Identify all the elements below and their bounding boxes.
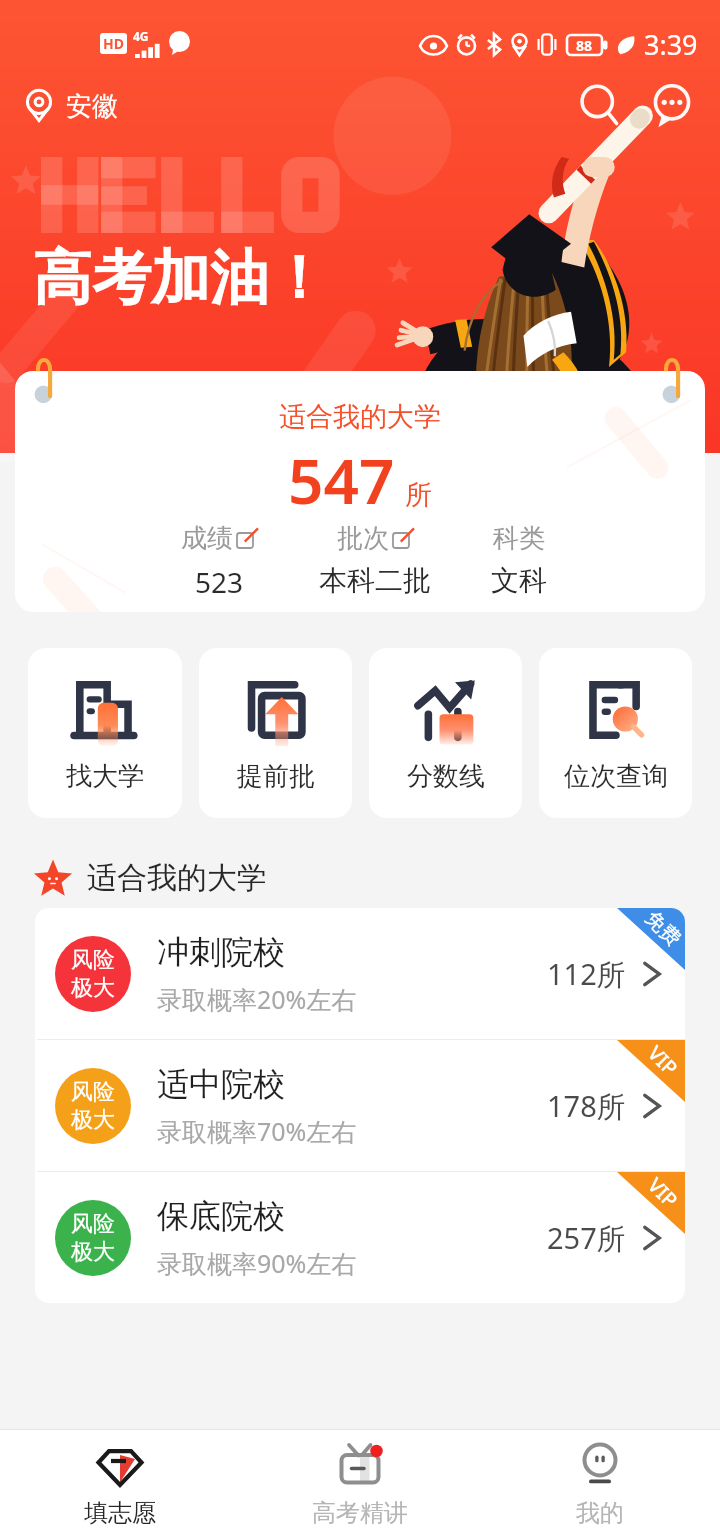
staticText: HD [103, 34, 124, 53]
button[interactable]: 风险 [35, 1172, 685, 1303]
staticText: 冲刺院校 [157, 932, 285, 972]
staticText: 高考精讲 [312, 1498, 408, 1528]
button[interactable]: Messages [644, 78, 700, 134]
staticText: 适中院校 [157, 1064, 285, 1104]
staticText: 找大学 [66, 760, 144, 793]
staticText: 保底院校 [157, 1196, 285, 1236]
staticText: 高考加油！ [33, 241, 328, 315]
staticText: 523 [195, 563, 244, 601]
button[interactable]: Search [572, 78, 628, 134]
button[interactable]: 风险 [35, 1040, 685, 1171]
button[interactable]: 分数线 [369, 648, 522, 818]
staticText: 位次查询 [564, 760, 668, 793]
staticText: VIP [642, 1172, 684, 1213]
staticText: 我的 [576, 1498, 624, 1528]
staticText: 88 [576, 36, 593, 55]
staticText: 录取概率70%左右 [157, 1114, 357, 1148]
staticText: 填志愿 [84, 1498, 156, 1528]
staticText: 科类 [493, 522, 545, 555]
staticText: 4G [133, 28, 149, 44]
staticText: 极大 [71, 1106, 115, 1134]
staticText: 适合我的大学 [87, 859, 267, 897]
staticText: 成绩 [181, 522, 233, 555]
staticText: 178所 [547, 1086, 626, 1126]
staticText: 批次 [337, 522, 389, 555]
staticText: 风险 [71, 1078, 115, 1106]
button[interactable]: 风险 [35, 908, 685, 1039]
staticText: 风险 [71, 1210, 115, 1238]
staticText: VIP [642, 1040, 684, 1081]
button[interactable]: 提前批 [199, 648, 352, 818]
button[interactable]: 位次查询 [539, 648, 692, 818]
staticText: 适合我的大学 [279, 400, 441, 434]
button[interactable]: 填志愿 [0, 1430, 240, 1540]
staticText: 112所 [547, 954, 626, 994]
staticText: 极大 [71, 1238, 115, 1266]
button[interactable]: 找大学 [28, 648, 182, 818]
staticText: 提前批 [237, 760, 315, 793]
staticText: 风险 [71, 946, 115, 974]
staticText: 547 [288, 438, 395, 522]
staticText: 257所 [547, 1218, 626, 1258]
button[interactable]: 高考精讲 [240, 1430, 480, 1540]
staticText: 安徽 [66, 90, 118, 123]
staticText: 3:39 [644, 26, 698, 63]
staticText: 免费 [640, 908, 685, 951]
staticText: 极大 [71, 974, 115, 1002]
button[interactable]: 我的 [480, 1430, 720, 1540]
staticText: 录取概率20%左右 [157, 982, 357, 1016]
staticText: 分数线 [407, 760, 485, 793]
staticText: 本科二批 [319, 563, 431, 598]
staticText: 所 [405, 478, 432, 512]
staticText: 文科 [491, 563, 547, 598]
staticText: 录取概率90%左右 [157, 1246, 357, 1280]
